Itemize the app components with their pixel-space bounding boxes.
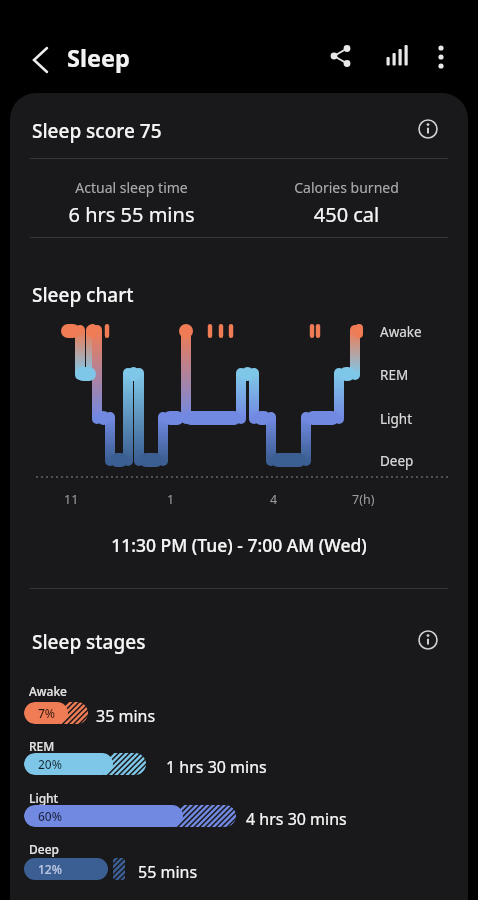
- staticText: 11: [64, 491, 79, 508]
- staticText: Sleep: [67, 42, 130, 74]
- staticText: 1 hrs 30 mins: [166, 756, 267, 778]
- staticText: Light: [380, 410, 413, 428]
- button[interactable]: [421, 37, 461, 77]
- staticText: 4: [270, 491, 278, 508]
- staticText: 55 mins: [138, 861, 198, 883]
- button[interactable]: [377, 36, 417, 76]
- button[interactable]: 60%: [24, 805, 236, 827]
- staticText: 60%: [38, 808, 62, 824]
- staticText: 7%: [38, 705, 56, 721]
- button[interactable]: 12%: [24, 858, 125, 880]
- button[interactable]: [20, 38, 60, 78]
- staticText: 6 hrs 55 mins: [17, 201, 246, 228]
- staticText: Sleep stages: [32, 629, 146, 655]
- button[interactable]: [410, 111, 446, 147]
- staticText: 450 cal: [232, 201, 461, 228]
- staticText: 12%: [38, 861, 62, 877]
- staticText: Awake: [380, 323, 422, 341]
- staticText: REM: [380, 366, 409, 384]
- button[interactable]: [321, 36, 361, 76]
- button[interactable]: [410, 622, 446, 658]
- staticText: 7(h): [352, 491, 375, 508]
- staticText: Calories burned: [232, 178, 461, 197]
- staticText: 35 mins: [96, 705, 156, 727]
- staticText: Sleep score 75: [32, 118, 162, 144]
- staticText: Deep: [29, 841, 59, 857]
- staticText: REM: [29, 738, 55, 754]
- staticText: 1: [167, 491, 175, 508]
- staticText: Sleep chart: [32, 282, 134, 308]
- button[interactable]: 7%: [24, 702, 88, 724]
- staticText: Actual sleep time: [17, 178, 246, 197]
- staticText: 11:30 PM (Tue) - 7:00 AM (Wed): [10, 533, 468, 557]
- staticText: Awake: [29, 683, 68, 699]
- button[interactable]: 20%: [24, 753, 146, 775]
- staticText: Light: [29, 790, 59, 806]
- staticText: 4 hrs 30 mins: [246, 808, 347, 830]
- staticText: 20%: [38, 756, 62, 772]
- staticText: Deep: [380, 452, 414, 470]
